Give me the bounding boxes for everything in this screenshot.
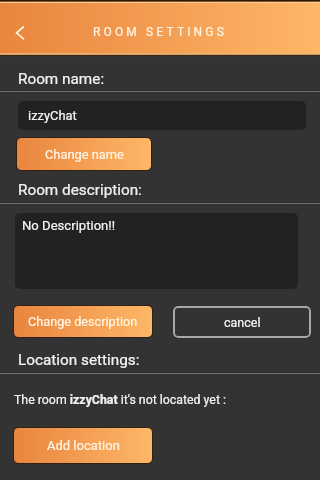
staticText: Location settings: bbox=[18, 351, 140, 369]
button[interactable]: Change name bbox=[17, 138, 151, 170]
staticText: cancel bbox=[224, 315, 261, 330]
button[interactable]: Add location bbox=[14, 428, 152, 463]
button[interactable]: No Description!! bbox=[15, 213, 298, 289]
staticText: The room izzyChat it's not located yet : bbox=[14, 393, 227, 407]
button[interactable]: cancel bbox=[173, 306, 311, 338]
staticText: Room description: bbox=[18, 181, 142, 199]
staticText: Change name bbox=[45, 147, 124, 162]
button[interactable]: Back bbox=[2, 12, 38, 48]
staticText: izzyChat bbox=[28, 108, 77, 123]
staticText: ROOM SETTINGS bbox=[93, 25, 227, 39]
button[interactable]: izzyChat bbox=[18, 101, 306, 130]
staticText: No Description!! bbox=[22, 218, 116, 233]
staticText: Room name: bbox=[18, 70, 105, 88]
button[interactable]: Change description bbox=[14, 306, 152, 337]
staticText: Add location bbox=[47, 438, 120, 453]
staticText: Change description bbox=[28, 314, 138, 329]
